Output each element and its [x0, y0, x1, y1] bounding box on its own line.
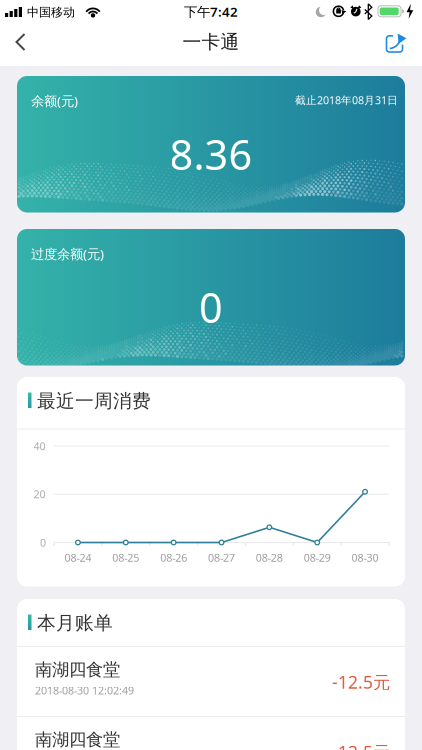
staticText: 中国移动 — [27, 5, 75, 20]
staticText: 一卡通 — [182, 30, 239, 53]
staticText: 南湖四食堂 — [35, 659, 120, 680]
button[interactable]: Share — [0, 24, 44, 66]
staticText: 0 — [40, 535, 46, 550]
staticText: -12.5元 — [332, 740, 390, 750]
staticText: -12.5元 — [332, 670, 390, 693]
staticText: 20 — [33, 487, 45, 501]
button[interactable]: 南湖四食堂 — [17, 716, 405, 750]
staticText: 2018-08-30 12:02:49 — [35, 683, 134, 697]
staticText: 0 — [199, 280, 223, 334]
staticText: 08-27 — [208, 550, 235, 565]
staticText: 08-26 — [160, 550, 187, 565]
staticText: 08-28 — [256, 550, 283, 565]
staticText: 过度余额(元) — [31, 245, 104, 263]
staticText: 余额(元) — [31, 92, 78, 110]
staticText: 08-25 — [112, 550, 139, 565]
staticText: 08-24 — [64, 550, 91, 565]
staticText: 08-29 — [304, 550, 331, 565]
button[interactable]: 南湖四食堂 — [17, 646, 405, 716]
staticText: 08-30 — [352, 550, 379, 565]
staticText: 8.36 — [169, 127, 252, 181]
staticText: 40 — [33, 439, 45, 453]
staticText: 下午7:42 — [184, 3, 238, 20]
staticText: 截止2018年08月31日 — [295, 93, 398, 107]
button[interactable]: Back — [0, 24, 44, 66]
staticText: 最近一周消费 — [37, 389, 151, 412]
staticText: 南湖四食堂 — [35, 729, 120, 750]
staticText: 本月账单 — [37, 611, 113, 634]
